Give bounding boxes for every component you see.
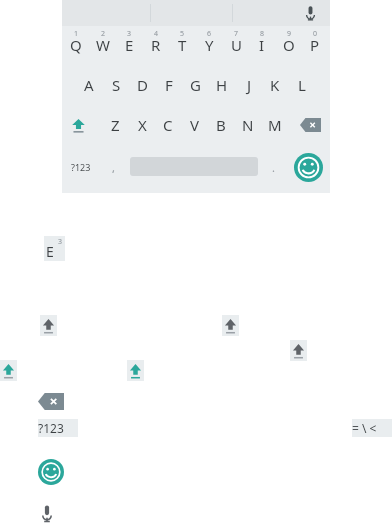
button[interactable]: M xyxy=(262,108,288,142)
button[interactable]: N xyxy=(235,108,261,142)
button[interactable]: Emoji xyxy=(290,149,326,185)
staticText: Q xyxy=(70,35,82,55)
button[interactable]: Shift xyxy=(290,340,307,361)
staticText: H xyxy=(216,75,228,95)
staticText: E xyxy=(46,242,54,261)
staticText: U xyxy=(231,35,242,55)
button[interactable]: E xyxy=(116,28,142,62)
staticText: M xyxy=(268,115,282,135)
button[interactable]: I xyxy=(249,28,275,62)
button[interactable]: G xyxy=(182,68,208,102)
staticText: L xyxy=(298,75,306,95)
staticText: T xyxy=(178,35,187,55)
staticText: D xyxy=(137,75,148,95)
button[interactable]: Y xyxy=(196,28,222,62)
button[interactable]: L xyxy=(289,68,315,102)
button[interactable]: Emoji xyxy=(38,459,64,485)
button[interactable]: C xyxy=(155,108,181,142)
staticText: 2 xyxy=(101,29,106,39)
staticText: I xyxy=(259,35,265,55)
button[interactable]: Shift xyxy=(40,315,57,336)
button[interactable]: H xyxy=(209,68,235,102)
staticText: . xyxy=(272,160,275,175)
staticText: J xyxy=(247,75,252,95)
staticText: 5 xyxy=(180,29,185,39)
staticText: A xyxy=(84,75,94,95)
button[interactable]: Q xyxy=(63,28,89,62)
staticText: O xyxy=(283,35,295,55)
staticText: G xyxy=(190,75,201,95)
staticText: P xyxy=(310,35,320,55)
staticText: F xyxy=(165,75,173,95)
button[interactable]: U xyxy=(223,28,249,62)
button[interactable]: , xyxy=(102,150,124,184)
button[interactable]: Backspace xyxy=(38,392,64,410)
button[interactable]: Backspace xyxy=(294,108,327,142)
button[interactable]: B xyxy=(208,108,234,142)
staticText: 1 xyxy=(74,29,79,39)
staticText: 6 xyxy=(207,29,212,39)
staticText: X xyxy=(138,115,147,135)
button[interactable]: ?123 xyxy=(64,150,98,184)
button[interactable]: Shift xyxy=(127,360,144,381)
button[interactable]: O xyxy=(276,28,302,62)
button[interactable]: T xyxy=(169,28,195,62)
staticText: N xyxy=(242,115,254,135)
button[interactable]: Shift xyxy=(0,360,17,381)
staticText: V xyxy=(190,115,200,135)
staticText: = \ < xyxy=(352,420,377,436)
staticText: R xyxy=(151,35,161,55)
staticText: ?123 xyxy=(38,420,64,436)
button[interactable]: Voice input xyxy=(298,2,322,24)
button[interactable]: S xyxy=(103,68,129,102)
staticText: K xyxy=(270,75,280,95)
staticText: 3 xyxy=(58,237,63,247)
staticText: ?123 xyxy=(71,161,91,173)
staticText: , xyxy=(112,160,115,175)
staticText: 3 xyxy=(127,29,132,39)
staticText: 0 xyxy=(313,29,318,39)
button[interactable]: R xyxy=(143,28,169,62)
button[interactable]: V xyxy=(182,108,208,142)
button[interactable]: Shift xyxy=(222,315,239,336)
staticText: 4 xyxy=(154,29,159,39)
button[interactable]: Voice input xyxy=(36,500,58,526)
staticText: S xyxy=(112,75,121,95)
staticText: W xyxy=(96,35,110,55)
staticText: Z xyxy=(111,115,120,135)
button[interactable]: Shift xyxy=(63,108,93,142)
button[interactable]: . xyxy=(262,150,284,184)
button[interactable]: D xyxy=(129,68,155,102)
staticText: Y xyxy=(205,35,214,55)
button[interactable]: Z xyxy=(102,108,128,142)
button[interactable]: A xyxy=(76,68,102,102)
button[interactable]: J xyxy=(236,68,262,102)
staticText: 8 xyxy=(260,29,265,39)
staticText: 9 xyxy=(287,29,292,39)
button[interactable]: P xyxy=(302,28,328,62)
staticText: E xyxy=(125,35,134,55)
staticText: B xyxy=(216,115,226,135)
button[interactable]: K xyxy=(262,68,288,102)
button[interactable]: X xyxy=(129,108,155,142)
staticText: 7 xyxy=(234,29,239,39)
button[interactable]: W xyxy=(90,28,116,62)
button[interactable]: F xyxy=(156,68,182,102)
staticText: C xyxy=(163,115,173,135)
